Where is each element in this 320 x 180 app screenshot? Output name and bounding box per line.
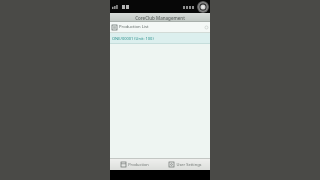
button[interactable]: ONE/00001 (Unit: 100) [110,33,210,43]
button[interactable]: Production List [110,22,210,32]
staticText: CoreClub Management [135,15,185,21]
staticText: Production [128,162,149,167]
button[interactable]: Production [110,158,160,170]
button[interactable]: User Settings [160,158,210,170]
staticText: Production List [119,24,149,30]
staticText: ONE/00001 (Unit: 100) [112,36,154,41]
staticText: User Settings [176,162,202,167]
